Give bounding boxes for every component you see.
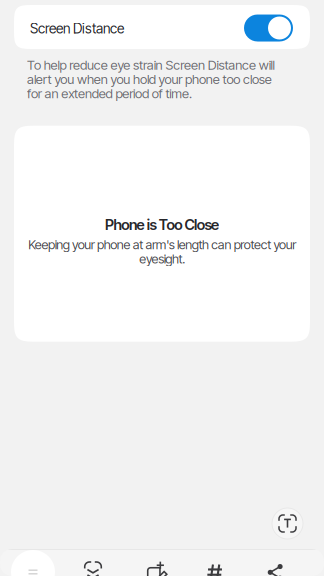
button[interactable]: Live Text	[272, 508, 303, 539]
button[interactable]: New note	[139, 560, 173, 576]
button[interactable]: Screen Distance	[14, 5, 310, 49]
staticText: Keeping your phone at arm's length can p…	[28, 237, 296, 266]
button[interactable]: Share	[258, 561, 292, 576]
staticText: Phone is Too Close	[105, 216, 219, 233]
staticText: To help reduce eye strain Screen Distanc…	[27, 58, 274, 101]
button[interactable]: Tags	[198, 561, 232, 576]
button[interactable]: Library	[11, 550, 55, 576]
button[interactable]: Scroll to bottom	[76, 560, 110, 576]
staticText: Screen Distance	[30, 20, 124, 37]
